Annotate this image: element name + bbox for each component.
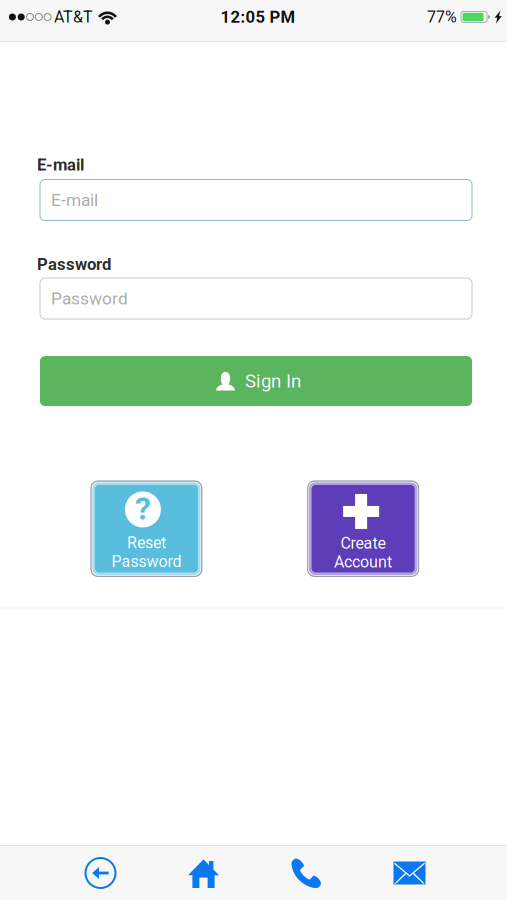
button[interactable]: Create <box>308 481 418 576</box>
button[interactable]: ? <box>91 481 202 576</box>
staticText: E-mail <box>37 155 84 174</box>
staticText: Create <box>341 534 386 553</box>
button[interactable]: Call <box>255 846 358 900</box>
staticText: 77% <box>427 8 457 26</box>
staticText: Sign In <box>245 370 301 392</box>
staticText: Account <box>334 553 392 571</box>
button[interactable]: Back <box>49 846 152 900</box>
staticText: Password <box>37 254 111 274</box>
staticText: ? <box>135 490 151 527</box>
button[interactable]: Mail <box>358 846 461 900</box>
staticText: E-mail <box>51 190 98 210</box>
staticText: Reset <box>127 533 166 552</box>
button[interactable]: Sign In <box>40 356 472 406</box>
staticText: AT&T <box>54 8 93 26</box>
staticText: 12:05 PM <box>220 7 295 27</box>
staticText: Password <box>51 288 128 309</box>
button[interactable]: Home <box>152 846 255 900</box>
staticText: Password <box>111 552 181 571</box>
